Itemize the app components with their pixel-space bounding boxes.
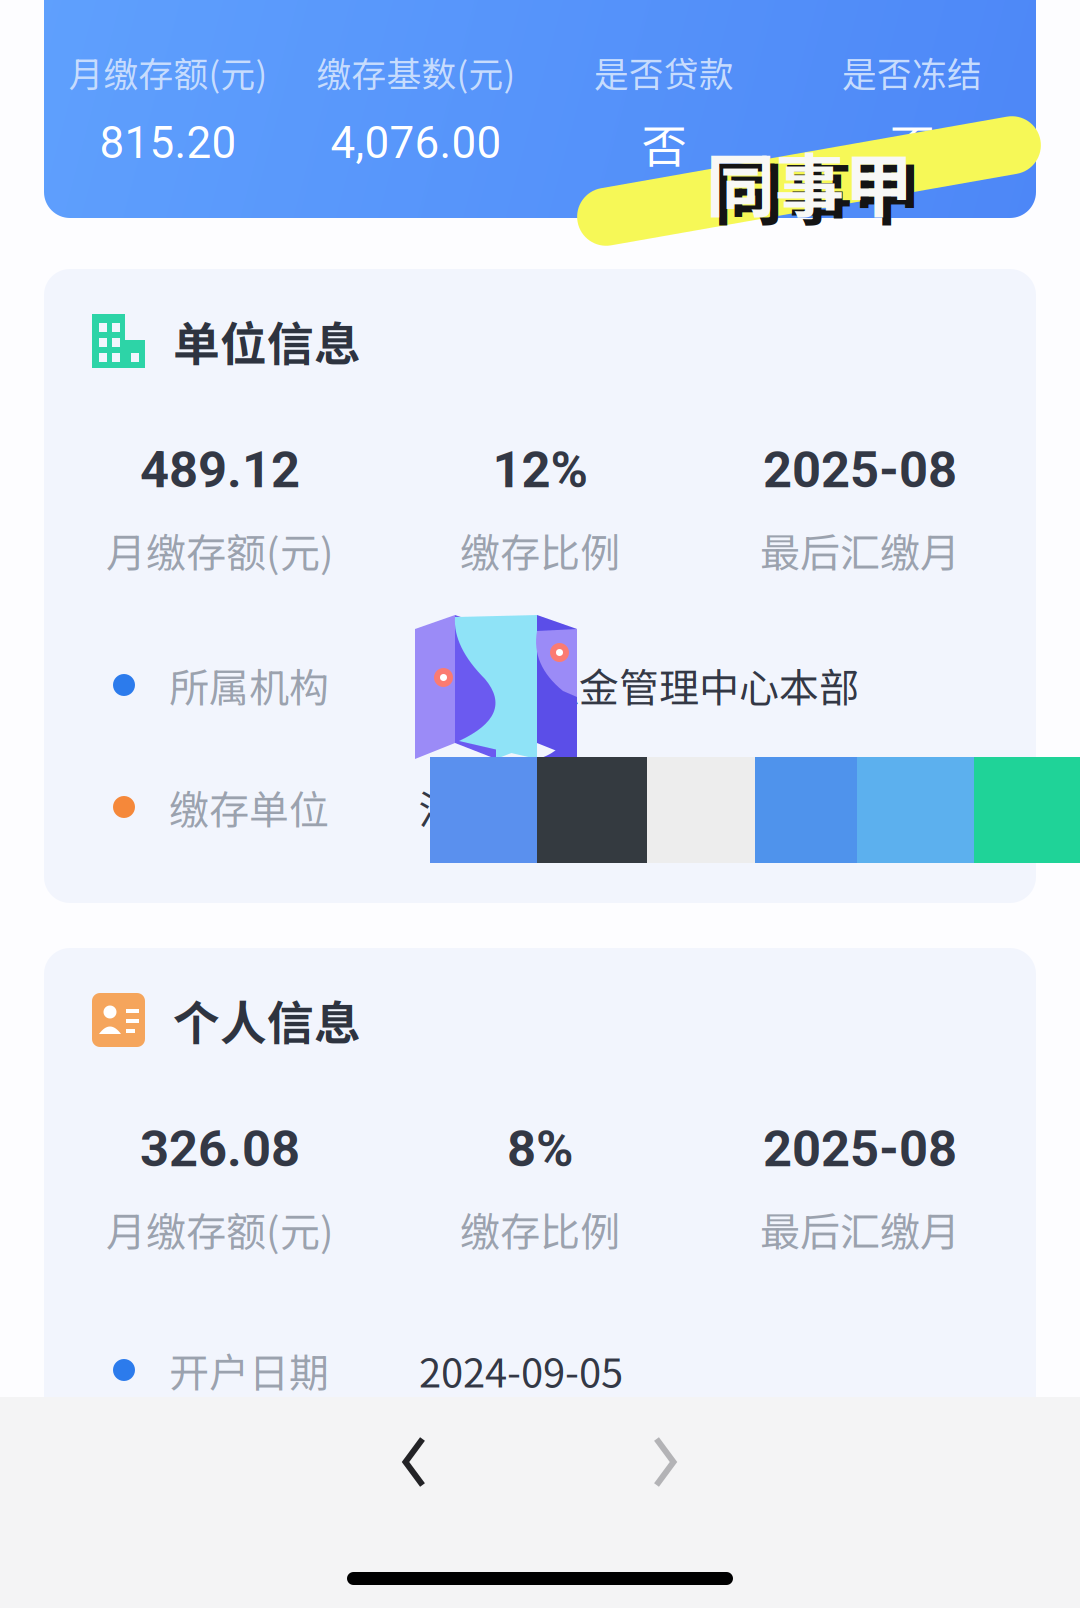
staticText: 326.08 bbox=[140, 1119, 300, 1179]
staticText: 单位信息 bbox=[173, 307, 361, 375]
staticText: 同事甲 bbox=[714, 139, 921, 239]
staticText: 住房公积金管理中心本部 bbox=[419, 656, 859, 714]
staticText: 月缴存额(元) bbox=[106, 1200, 334, 1258]
staticText: 个人信息 bbox=[173, 986, 361, 1054]
staticText: 所属机构 bbox=[169, 656, 329, 714]
staticText: 是否冻结 bbox=[842, 47, 982, 97]
staticText: 否 bbox=[889, 110, 934, 176]
staticText: 同事甲 bbox=[706, 131, 913, 231]
staticText: 月缴存额(元) bbox=[68, 47, 267, 97]
button[interactable]: Back bbox=[349, 1410, 479, 1514]
staticText: 最后汇缴月 bbox=[760, 521, 960, 579]
staticText: 8% bbox=[507, 1119, 573, 1179]
staticText: 河南省某某有限公司 bbox=[419, 778, 779, 836]
staticText: 缴存比例 bbox=[460, 1200, 620, 1258]
button[interactable]: 开户日期 bbox=[113, 1347, 1036, 1393]
staticText: 4,076.00 bbox=[330, 117, 501, 169]
staticText: 489.12 bbox=[140, 440, 300, 500]
staticText: 缴存比例 bbox=[460, 521, 620, 579]
staticText: 月缴存额(元) bbox=[106, 521, 334, 579]
button[interactable]: 缴存单位 bbox=[113, 784, 1036, 830]
button[interactable]: Forward bbox=[600, 1410, 730, 1514]
staticText: 2024-09-05 bbox=[419, 1341, 623, 1399]
staticText: 缴存基数(元) bbox=[316, 47, 515, 97]
staticText: 否 bbox=[641, 110, 686, 176]
staticText: 2025-08 bbox=[763, 440, 957, 500]
staticText: 12% bbox=[492, 440, 587, 500]
staticText: 2025-08 bbox=[763, 1119, 957, 1179]
staticText: 是否贷款 bbox=[594, 47, 734, 97]
staticText: 815.20 bbox=[99, 117, 236, 169]
staticText: 最后汇缴月 bbox=[760, 1200, 960, 1258]
staticText: 开户日期 bbox=[169, 1341, 329, 1399]
staticText: 缴存单位 bbox=[169, 778, 329, 836]
button[interactable]: 所属机构 bbox=[113, 662, 1036, 708]
